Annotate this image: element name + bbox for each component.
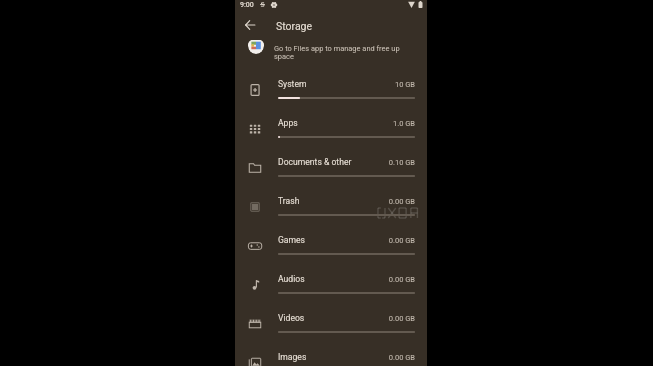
button[interactable]: Documents & other — [235, 152, 427, 191]
button[interactable]: Go to Files app to manage and free up sp… — [235, 33, 427, 63]
button[interactable]: Apps — [235, 113, 427, 152]
staticText: 9:00 — [240, 1, 254, 9]
staticText: 0.00 GB — [278, 314, 415, 323]
button[interactable]: Back — [243, 18, 257, 32]
button[interactable]: Images — [235, 347, 427, 366]
staticText: Audios — [278, 274, 305, 284]
staticText: 0.00 GB — [278, 353, 415, 362]
staticText: Videos — [278, 313, 305, 323]
staticText: Storage — [276, 20, 313, 32]
button[interactable]: Games — [235, 230, 427, 269]
staticText: 0.00 GB — [278, 275, 415, 284]
button[interactable]: System — [235, 74, 427, 113]
staticText: 1.0 GB — [278, 119, 415, 128]
button[interactable]: Audios — [235, 269, 427, 308]
staticText: Documents & other — [278, 157, 352, 167]
staticText: 0.00 GB — [278, 197, 415, 206]
staticText: Trash — [278, 196, 300, 206]
button[interactable]: Trash — [235, 191, 427, 230]
staticText: Images — [278, 352, 307, 362]
button[interactable]: Videos — [235, 308, 427, 347]
staticText: Games — [278, 235, 306, 245]
staticText: 0.00 GB — [278, 236, 415, 245]
staticText: Apps — [278, 118, 298, 128]
staticText: Go to Files app to manage and free up sp… — [274, 44, 403, 61]
staticText: 10 GB — [278, 80, 415, 89]
staticText: System — [278, 79, 307, 89]
staticText: 0.10 GB — [278, 158, 415, 167]
